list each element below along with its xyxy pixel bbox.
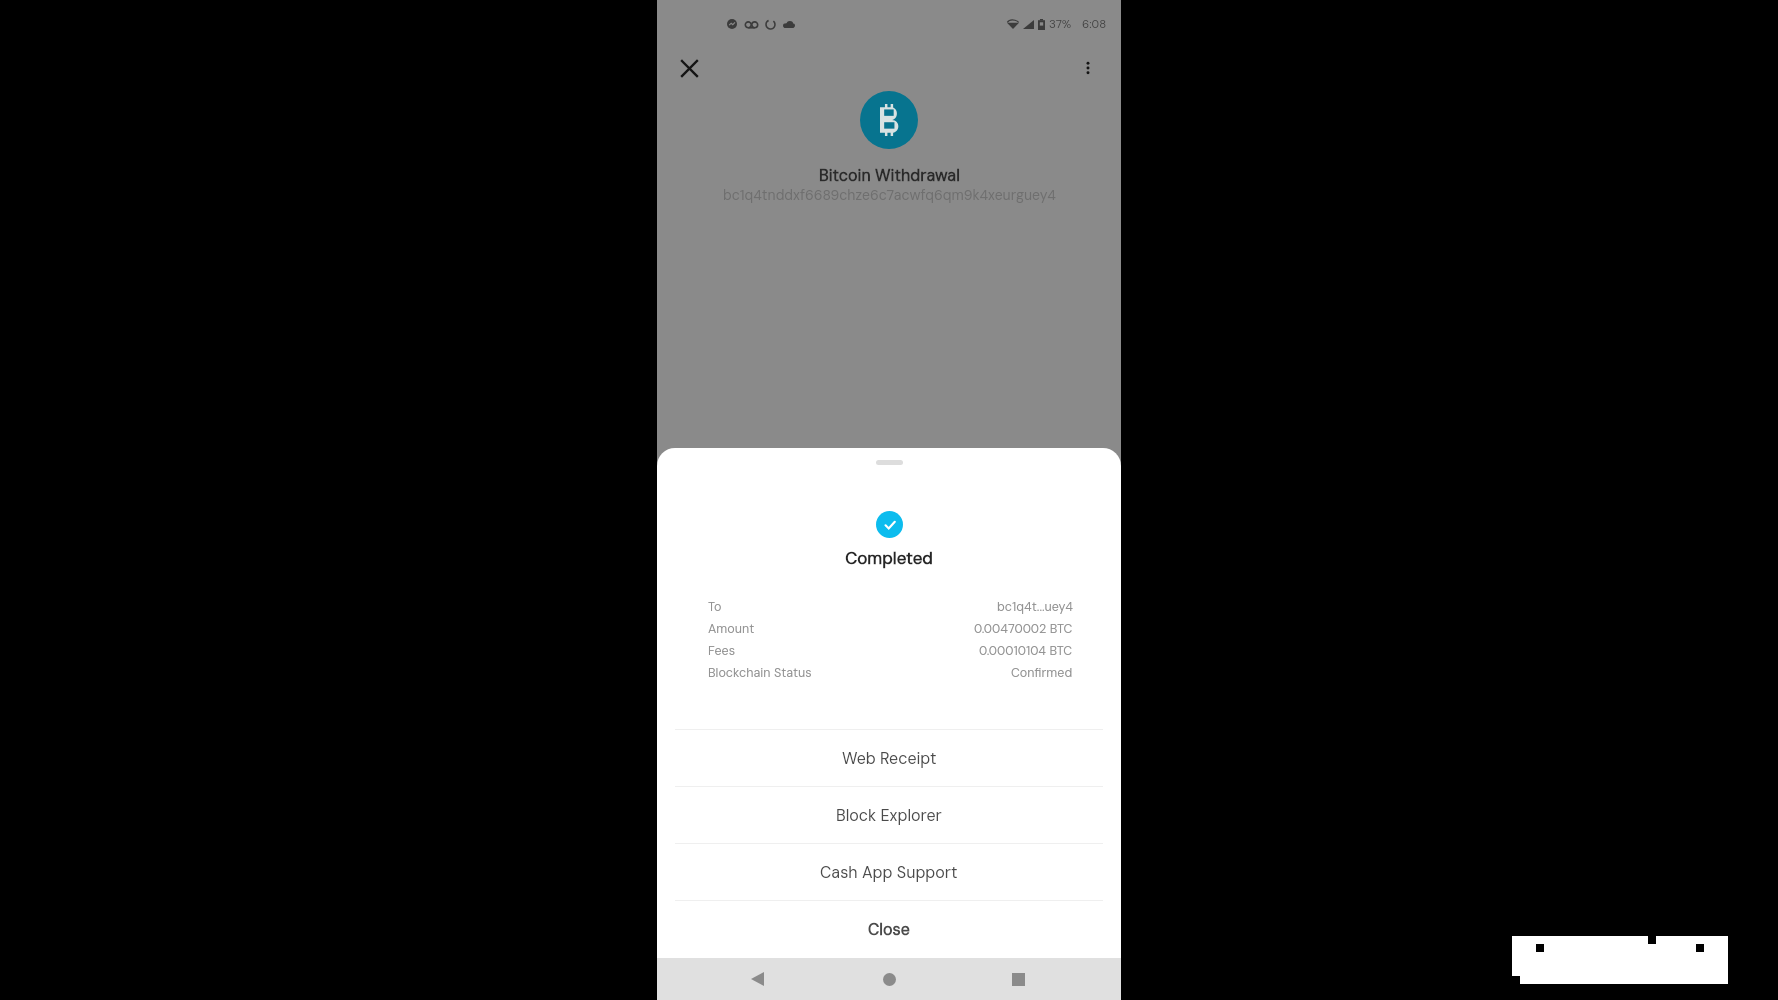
staticText: bc1q4t...uey4: [997, 599, 1073, 615]
staticText: bc1q4tnddxf6689chze6c7acwfq6qm9k4xeurgue…: [723, 186, 1056, 204]
staticText: Cash App Support: [820, 862, 958, 883]
staticText: To: [708, 599, 722, 615]
button[interactable]: Back: [737, 959, 777, 999]
staticText: 0.00010104 BTC: [979, 643, 1073, 659]
button[interactable]: Recent apps: [998, 959, 1038, 999]
button[interactable]: More options: [1074, 54, 1102, 82]
staticText: Blockchain Status: [708, 665, 812, 681]
staticText: Completed: [657, 547, 1121, 569]
button[interactable]: Close: [657, 901, 1121, 957]
button[interactable]: Block Explorer: [657, 787, 1121, 843]
staticText: 0.00470002 BTC: [974, 621, 1073, 637]
staticText: 37%: [1049, 17, 1072, 32]
staticText: Confirmed: [1011, 665, 1073, 681]
staticText: Fees: [708, 643, 735, 659]
staticText: Block Explorer: [836, 805, 942, 826]
button[interactable]: Close: [675, 54, 703, 82]
staticText: Bitcoin Withdrawal: [819, 165, 960, 186]
staticText: Amount: [708, 621, 755, 637]
staticText: 6:08: [1082, 17, 1107, 32]
button[interactable]: Home: [869, 959, 909, 999]
button[interactable]: Cash App Support: [657, 844, 1121, 900]
staticText: Close: [868, 919, 910, 940]
staticText: Web Receipt: [842, 748, 937, 769]
button[interactable]: Web Receipt: [657, 730, 1121, 786]
